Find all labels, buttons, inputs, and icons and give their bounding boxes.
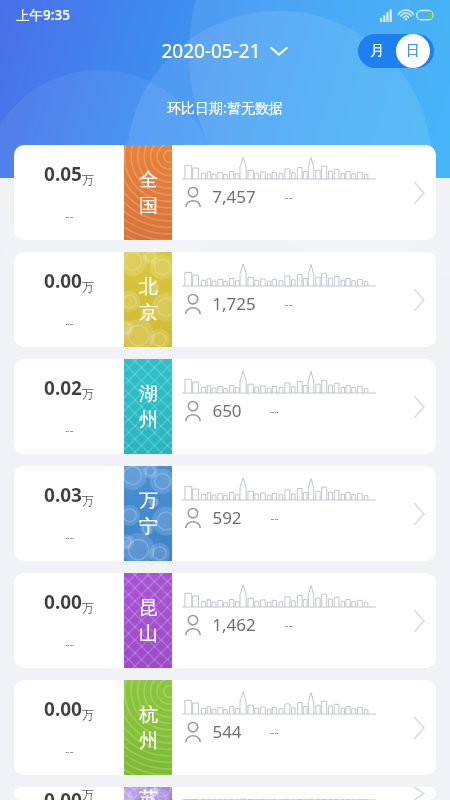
staticText: -- bbox=[284, 295, 293, 313]
button[interactable]: 月 bbox=[358, 34, 434, 68]
staticText: 湖 bbox=[139, 382, 158, 406]
staticText: -- bbox=[65, 528, 74, 546]
staticText: 650 bbox=[212, 399, 242, 422]
button[interactable]: 0.00 bbox=[14, 680, 436, 775]
button[interactable]: 2020-05-21 bbox=[90, 38, 358, 64]
staticText: 0.03 bbox=[44, 482, 82, 508]
staticText: 全 bbox=[139, 168, 158, 192]
staticText: 1,725 bbox=[212, 292, 256, 315]
staticText: 2020-05-21 bbox=[161, 38, 261, 64]
button[interactable]: 0.00 bbox=[14, 252, 436, 347]
other: 详情 bbox=[402, 252, 436, 347]
staticText: 京 bbox=[139, 301, 158, 325]
staticText: 0.02 bbox=[44, 375, 82, 401]
staticText: 0.00 bbox=[44, 696, 82, 722]
staticText: -- bbox=[65, 742, 74, 760]
button[interactable]: 0.05 bbox=[14, 145, 436, 240]
other: 详情 bbox=[402, 359, 436, 454]
staticText: 万 bbox=[82, 787, 94, 800]
other: 详情 bbox=[402, 787, 436, 800]
staticText: 日 bbox=[406, 42, 420, 60]
staticText: 万 bbox=[82, 707, 94, 722]
button[interactable]: 0.03 bbox=[14, 466, 436, 561]
other: 详情 bbox=[402, 680, 436, 775]
other: 详情 bbox=[402, 573, 436, 668]
staticText: 1,462 bbox=[212, 613, 256, 636]
other: 详情 bbox=[402, 466, 436, 561]
staticText: 0.00 bbox=[44, 589, 82, 615]
staticText: 544 bbox=[212, 720, 242, 743]
staticText: 万 bbox=[82, 600, 94, 615]
staticText: 万 bbox=[82, 279, 94, 294]
staticText: 北 bbox=[139, 275, 158, 299]
staticText: 0.00 bbox=[44, 268, 82, 294]
staticText: -- bbox=[284, 616, 293, 634]
staticText: 州 bbox=[139, 729, 158, 753]
staticText: -- bbox=[65, 207, 74, 225]
staticText: 州 bbox=[139, 408, 158, 432]
staticText: 环比日期:暂无数据 bbox=[167, 98, 283, 117]
staticText: 上午9:35 bbox=[16, 6, 70, 24]
staticText: -- bbox=[65, 314, 74, 332]
staticText: 万 bbox=[139, 489, 158, 513]
staticText: 0.00 bbox=[44, 787, 82, 800]
staticText: 592 bbox=[212, 506, 242, 529]
staticText: 昆 bbox=[139, 596, 158, 620]
staticText: -- bbox=[270, 723, 279, 741]
staticText: -- bbox=[65, 635, 74, 653]
staticText: 万 bbox=[82, 172, 94, 187]
staticText: 苏 bbox=[139, 787, 158, 800]
staticText: 万 bbox=[82, 386, 94, 401]
staticText: 月 bbox=[370, 42, 384, 60]
staticText: -- bbox=[65, 421, 74, 439]
staticText: 宁 bbox=[139, 515, 158, 539]
staticText: 国 bbox=[139, 194, 158, 218]
button[interactable]: 0.00 bbox=[14, 573, 436, 668]
button[interactable]: 0.02 bbox=[14, 359, 436, 454]
staticText: 万 bbox=[82, 493, 94, 508]
button[interactable]: 0.00 bbox=[14, 787, 436, 800]
staticText: 7,457 bbox=[212, 185, 256, 208]
staticText: -- bbox=[270, 509, 279, 527]
staticText: -- bbox=[284, 188, 293, 206]
staticText: 杭 bbox=[139, 703, 158, 727]
staticText: 0.05 bbox=[44, 161, 82, 187]
other: 详情 bbox=[402, 145, 436, 240]
staticText: 山 bbox=[139, 622, 158, 646]
staticText: -- bbox=[270, 402, 279, 420]
